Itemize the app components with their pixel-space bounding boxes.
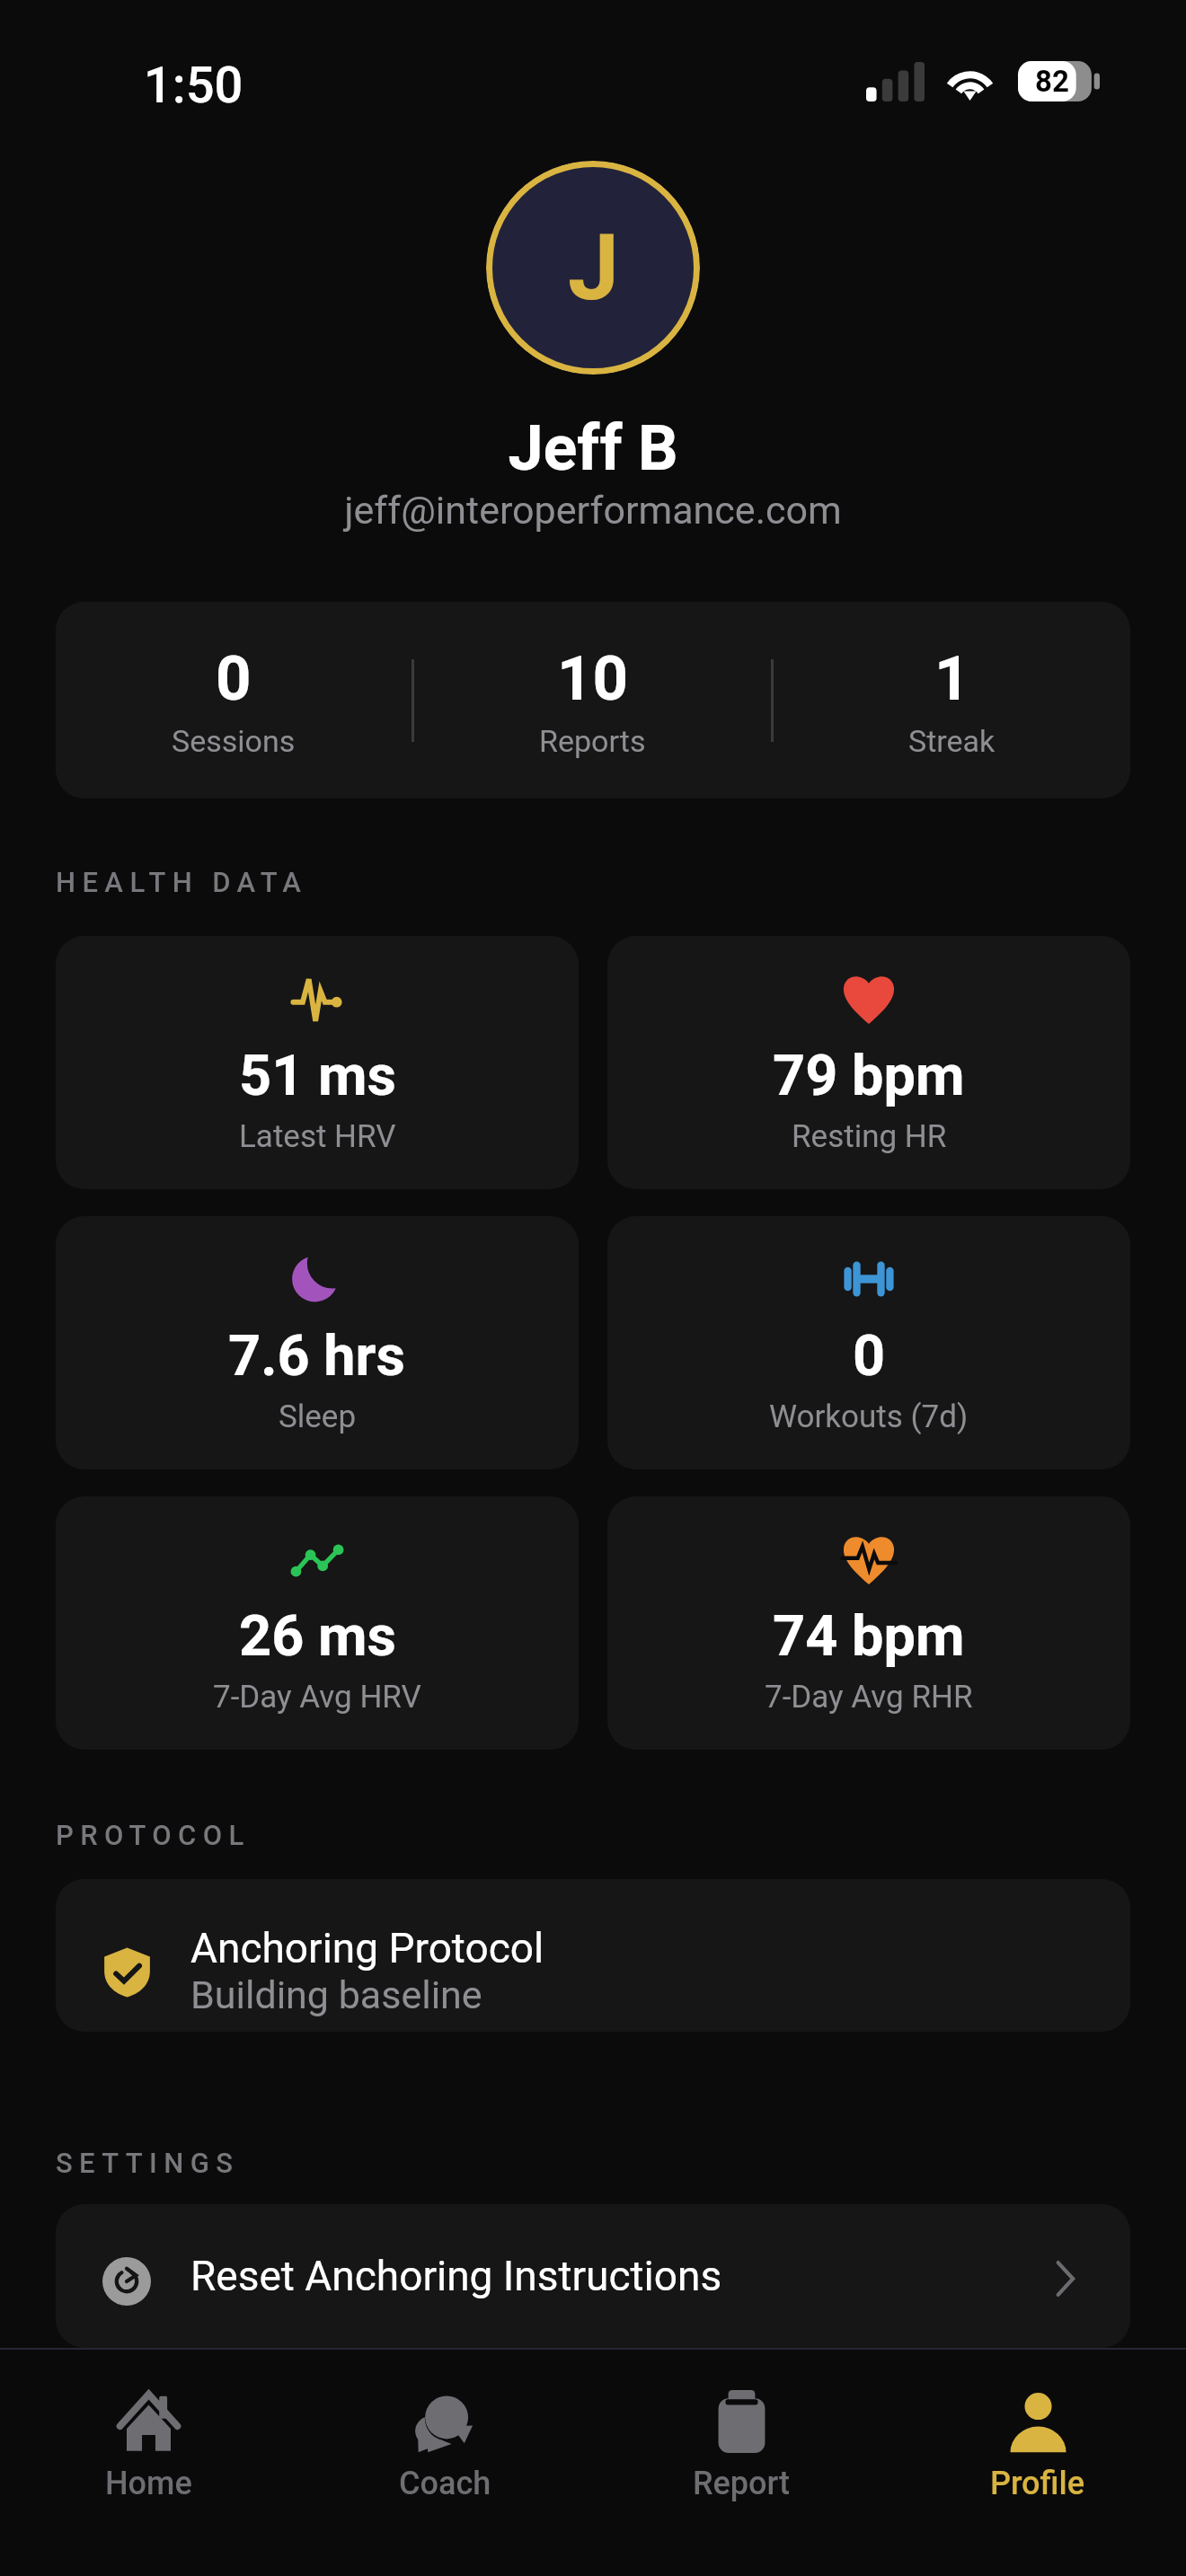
button[interactable]: 0	[56, 642, 412, 759]
staticText: Building baseline	[190, 1972, 482, 2017]
staticText: Reports	[539, 723, 646, 759]
staticText: 10	[557, 642, 629, 715]
button[interactable]: Home	[0, 2350, 296, 2502]
staticText: Latest HRV	[239, 1118, 396, 1155]
staticText: Home	[105, 2465, 192, 2502]
button[interactable]: 7.6 hrs	[56, 1216, 579, 1469]
staticText: 1:50	[144, 56, 243, 115]
staticText: Sessions	[172, 723, 296, 759]
button[interactable]: Reset Anchoring Instructions	[56, 2204, 1130, 2348]
staticText: 7-Day Avg HRV	[213, 1679, 421, 1716]
staticText: Profile	[990, 2465, 1085, 2502]
staticText: jeff@interoperformance.com	[0, 488, 1186, 533]
button[interactable]: 10	[414, 642, 771, 759]
button[interactable]: 74 bpm	[607, 1496, 1130, 1750]
button[interactable]: Profile	[889, 2350, 1186, 2502]
staticText: PROTOCOL	[56, 1819, 251, 1851]
staticText: 74 bpm	[773, 1603, 965, 1670]
staticText: 82	[1035, 64, 1069, 99]
button[interactable]: Report	[593, 2350, 889, 2502]
staticText: 7-Day Avg RHR	[765, 1679, 973, 1716]
staticText: Streak	[908, 723, 996, 759]
button[interactable]: 51 ms	[56, 936, 579, 1189]
staticText: 51 ms	[239, 1043, 396, 1109]
staticText: Workouts (7d)	[769, 1398, 969, 1435]
button[interactable]: 79 bpm	[607, 936, 1130, 1189]
button[interactable]: Coach	[296, 2350, 593, 2502]
staticText: J	[568, 214, 619, 322]
staticText: Sleep	[279, 1398, 357, 1435]
staticText: Resting HR	[792, 1118, 947, 1155]
staticText: SETTINGS	[56, 2147, 240, 2179]
button[interactable]: 0	[607, 1216, 1130, 1469]
button[interactable]: Anchoring Protocol	[56, 1879, 1130, 2032]
staticText: Report	[693, 2465, 791, 2502]
staticText: HEALTH DATA	[56, 866, 308, 898]
staticText: Jeff B	[0, 411, 1186, 485]
button[interactable]: 26 ms	[56, 1496, 579, 1750]
staticText: 0	[216, 642, 252, 715]
staticText: 26 ms	[239, 1603, 396, 1670]
button[interactable]: 1	[774, 642, 1130, 759]
staticText: 1	[934, 642, 970, 715]
staticText: 0	[853, 1323, 886, 1389]
staticText: Coach	[399, 2465, 491, 2502]
staticText: Anchoring Protocol	[190, 1924, 544, 1972]
button[interactable]: Profile photo	[486, 161, 700, 375]
staticText: 79 bpm	[773, 1043, 965, 1109]
staticText: Reset Anchoring Instructions	[190, 2252, 1053, 2300]
staticText: 7.6 hrs	[228, 1323, 406, 1389]
